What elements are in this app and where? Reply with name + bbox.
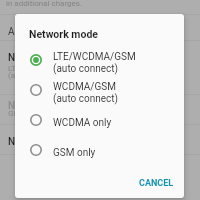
staticText: (auto connect): [53, 93, 119, 105]
button[interactable]: WCDMA only: [28, 105, 173, 135]
staticText: Network operators: [8, 100, 92, 112]
staticText: in additional charges.: [6, 0, 83, 8]
button[interactable]: CANCEL: [133, 174, 180, 193]
staticText: CANCEL: [139, 178, 174, 189]
staticText: GSM only: [53, 147, 96, 159]
button[interactable]: WCDMA/GSM: [28, 75, 173, 105]
staticText: WCDMA/GSM: [53, 81, 116, 93]
staticText: Global Data Roaming: [8, 109, 83, 118]
button[interactable]: LTE/WCDMA/GSM: [28, 45, 173, 75]
button[interactable]: GSM only: [28, 135, 173, 165]
staticText: Access Point Names: [8, 26, 101, 38]
staticText: LTE/WCDMA/GSM: [8, 64, 75, 73]
staticText: Network mode: [29, 28, 98, 40]
staticText: Network mode: [8, 52, 74, 64]
staticText: Network extenders: [8, 136, 93, 148]
staticText: (auto connect): [53, 63, 119, 75]
staticText: WCDMA only: [53, 117, 112, 129]
staticText: LTE/WCDMA/GSM: [53, 51, 136, 63]
staticText: (auto connect): [8, 71, 61, 80]
